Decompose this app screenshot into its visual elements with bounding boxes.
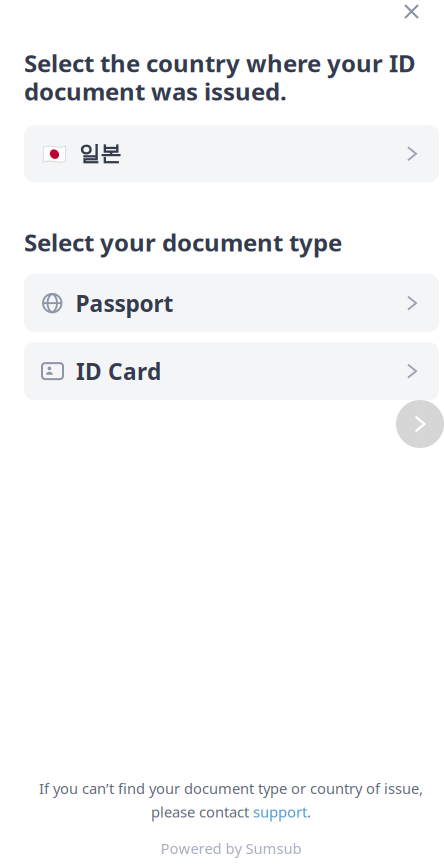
staticText: ID Card [76, 356, 161, 386]
button[interactable]: 🇯🇵 [24, 125, 439, 182]
staticText: Passport [75, 288, 173, 318]
button[interactable]: support [253, 802, 307, 821]
staticText: please contact [151, 802, 253, 821]
staticText: Select your document type [24, 226, 342, 258]
staticText: Powered by Sumsub [160, 838, 301, 858]
button[interactable]: ID Card [24, 342, 439, 400]
button[interactable]: Close [390, 0, 444, 29]
staticText: support [253, 802, 307, 821]
staticText: Select the country where your ID documen… [24, 47, 416, 107]
staticText: . [307, 802, 311, 821]
staticText: 🇯🇵 [42, 142, 67, 165]
button[interactable]: Next [396, 400, 444, 448]
staticText: If you can’t find your document type or … [39, 779, 423, 798]
button[interactable]: Passport [24, 274, 439, 332]
staticText: 일본 [79, 141, 121, 167]
